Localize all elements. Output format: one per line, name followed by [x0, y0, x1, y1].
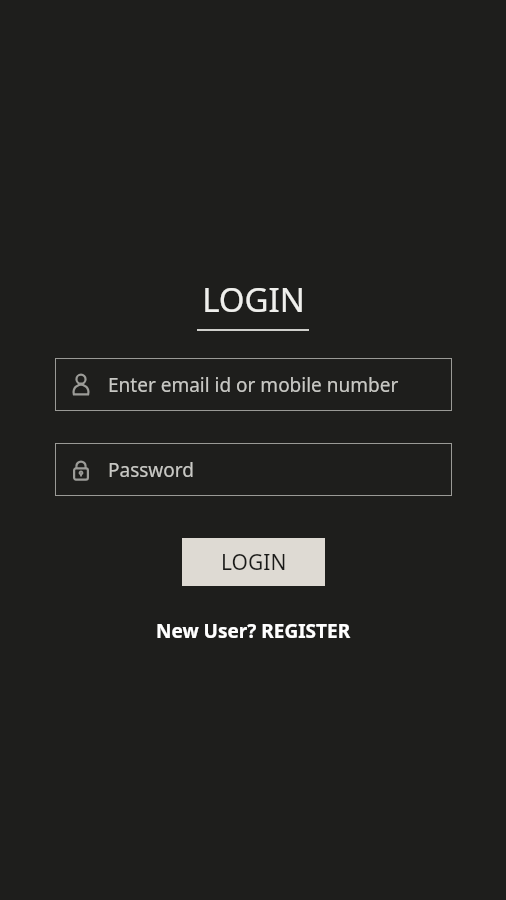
staticText: New User? REGISTER	[156, 618, 351, 644]
button[interactable]: LOGIN	[182, 538, 325, 586]
button[interactable]: User	[55, 358, 452, 411]
button[interactable]: New User? REGISTER	[156, 618, 351, 644]
staticText: Password	[108, 457, 194, 483]
staticText: LOGIN	[202, 277, 305, 322]
button[interactable]: Password	[55, 443, 452, 496]
other: User	[68, 372, 94, 398]
staticText: LOGIN	[221, 548, 287, 577]
staticText: Enter email id or mobile number	[108, 372, 399, 398]
other: Password	[68, 457, 94, 483]
